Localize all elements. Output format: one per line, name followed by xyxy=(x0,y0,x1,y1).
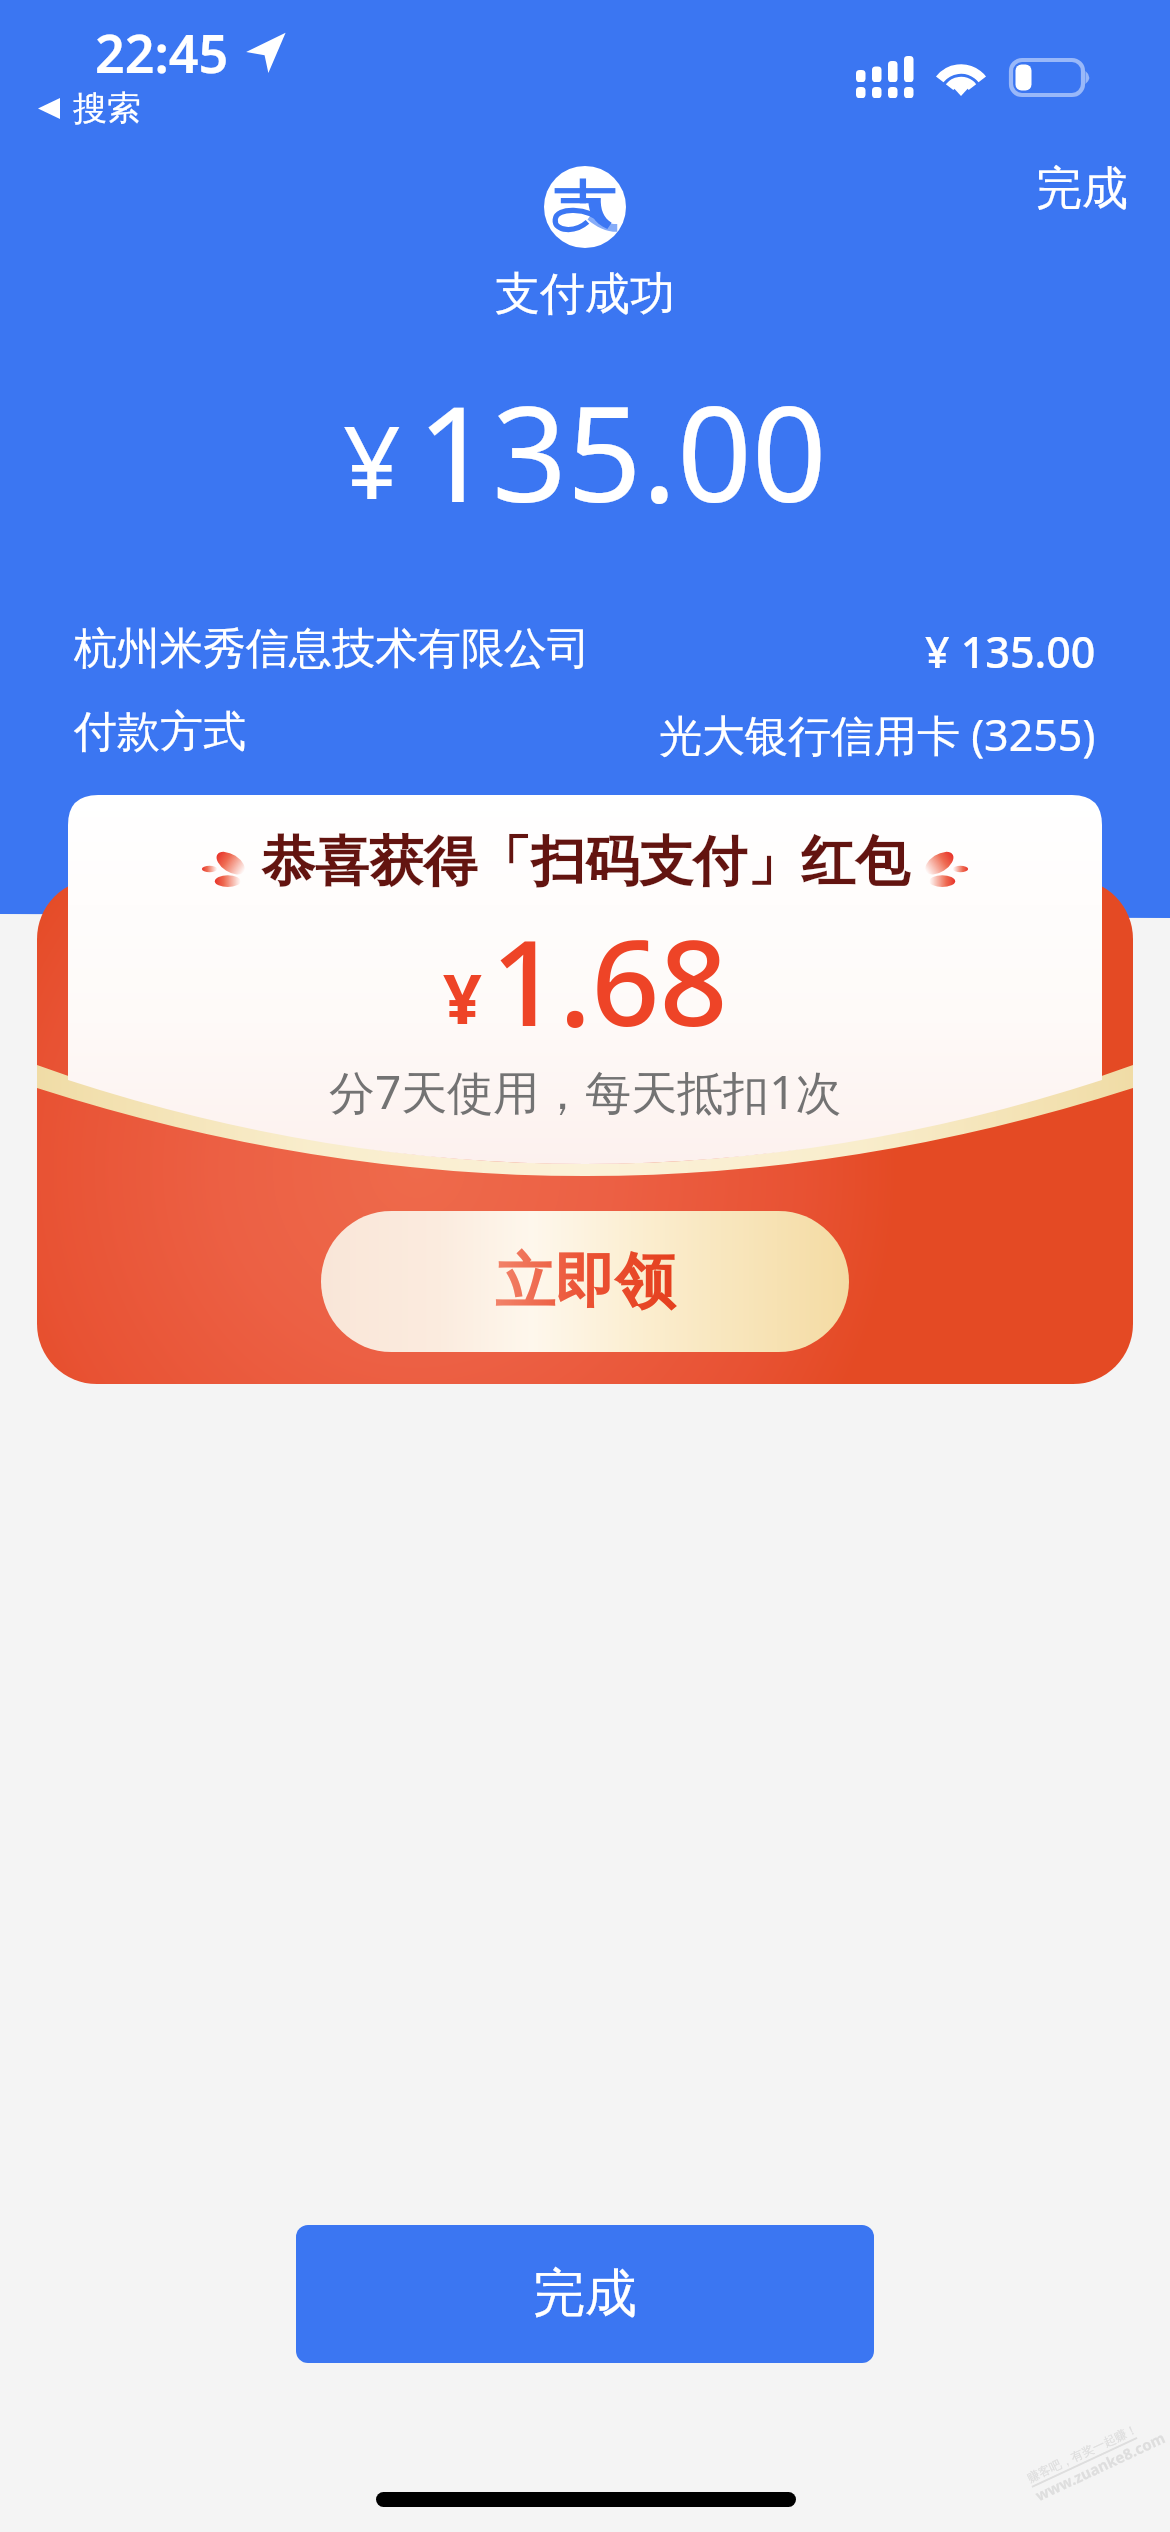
other: Alipay xyxy=(544,166,626,248)
staticText: 杭州米秀信息技术有限公司 xyxy=(74,622,590,676)
button[interactable]: 完成 xyxy=(296,2225,874,2363)
staticText: 135.00 xyxy=(417,362,827,540)
staticText: 付款方式 xyxy=(74,705,246,759)
staticText: 赚客吧，有奖一起赚！ xyxy=(1025,2421,1140,2485)
staticText: 光大银行信用卡 (3255) xyxy=(659,705,1096,764)
staticText: 支付成功 xyxy=(495,266,675,323)
staticText: ¥ xyxy=(343,391,401,529)
staticText: 完成 xyxy=(1036,160,1128,218)
staticText: ¥ 135.00 xyxy=(925,622,1096,681)
staticText: 分7天使用，每天抵扣1次 xyxy=(329,1060,842,1123)
button[interactable]: 搜索 xyxy=(38,87,141,130)
button[interactable] xyxy=(37,879,1133,1384)
staticText: 完成 xyxy=(533,2261,637,2327)
staticText: ¥ xyxy=(443,951,482,1044)
staticText: 22:45 xyxy=(95,17,229,88)
staticText: 立即领 xyxy=(495,1244,675,1320)
button[interactable]: 立即领 xyxy=(321,1211,849,1352)
staticText: www.zuanke8.com xyxy=(1032,2427,1168,2505)
staticText: 搜索 xyxy=(73,87,141,130)
staticText: 1.68 xyxy=(491,899,728,1061)
button[interactable]: 完成 xyxy=(1022,150,1142,228)
staticText: 恭喜获得「扫码支付」红包 xyxy=(261,828,909,896)
